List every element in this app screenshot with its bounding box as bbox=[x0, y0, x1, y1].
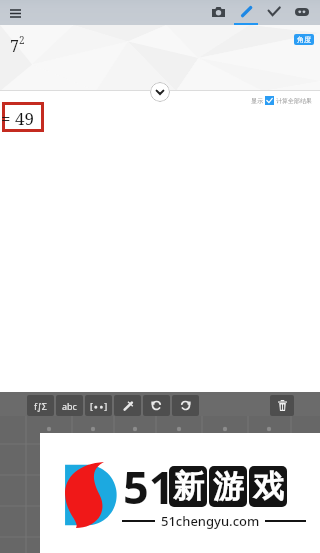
staticText: 计算全部结果 bbox=[276, 97, 312, 105]
staticText: f∫Σ bbox=[34, 400, 47, 412]
staticText: 51 bbox=[123, 456, 175, 517]
button[interactable]: Functions bbox=[27, 395, 54, 416]
staticText: 游 bbox=[213, 467, 244, 506]
button[interactable]: 显示 bbox=[251, 96, 312, 105]
button[interactable]: Matrix bbox=[85, 395, 112, 416]
staticText: abc bbox=[62, 400, 77, 412]
button[interactable]: Camera bbox=[204, 0, 232, 25]
button[interactable]: Alphabet bbox=[56, 395, 83, 416]
staticText: 角度 bbox=[297, 35, 311, 44]
button[interactable]: Expand bbox=[150, 82, 170, 102]
staticText: 2 bbox=[19, 33, 25, 47]
staticText: 7 bbox=[10, 35, 19, 57]
button[interactable]: Ink bbox=[114, 395, 141, 416]
button[interactable]: Eraser bbox=[288, 0, 316, 25]
button[interactable]: Pen bbox=[232, 0, 260, 25]
button[interactable]: Undo bbox=[143, 395, 170, 416]
button[interactable]: Confirm bbox=[260, 0, 288, 25]
button[interactable]: 角度 bbox=[294, 34, 314, 45]
staticText: 51chengyu.com bbox=[161, 512, 260, 530]
staticText: 戏 bbox=[253, 467, 284, 506]
staticText: 新 bbox=[173, 467, 204, 506]
staticText: 显示 bbox=[251, 97, 263, 105]
button[interactable]: Menu bbox=[4, 2, 27, 25]
staticText: [∙∙] bbox=[90, 400, 108, 412]
button[interactable]: Redo bbox=[172, 395, 199, 416]
button[interactable]: Delete bbox=[270, 395, 294, 416]
staticText: = 49 bbox=[1, 107, 34, 130]
